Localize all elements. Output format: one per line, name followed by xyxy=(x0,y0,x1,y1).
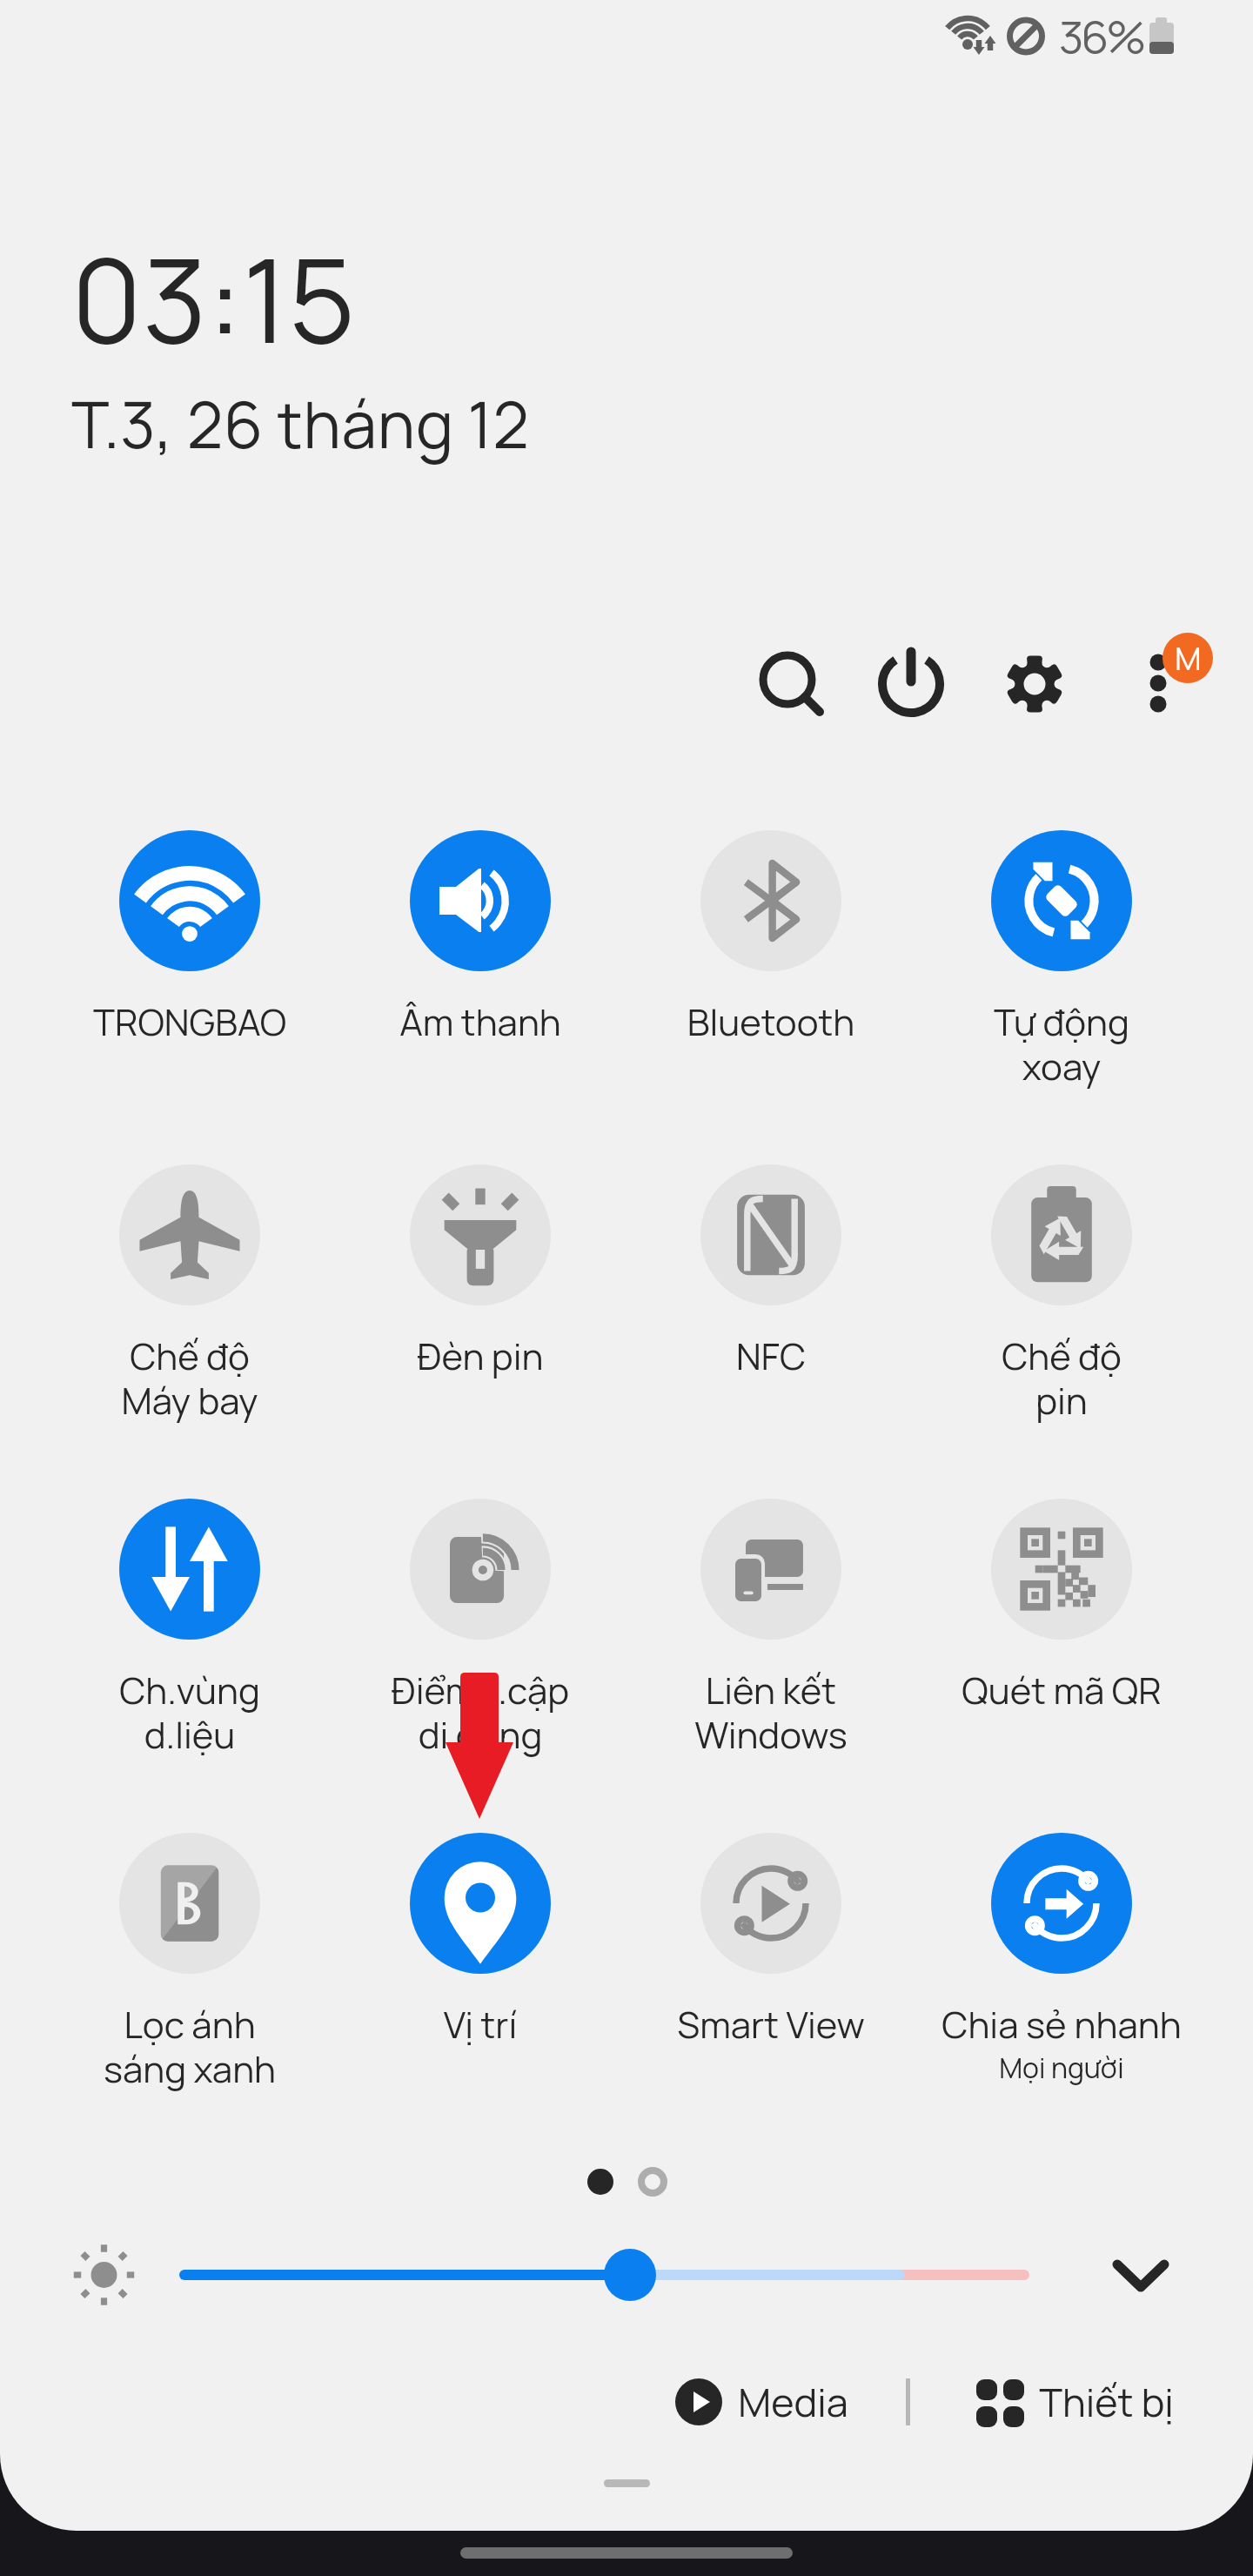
staticText: 36% xyxy=(1059,6,1144,67)
staticText: Lọc ánh sáng xanh xyxy=(44,1999,335,2094)
button[interactable]: Âm thanh xyxy=(335,830,626,1046)
staticText: Đèn pin xyxy=(335,1331,626,1380)
button[interactable]: Chia sẻ nhanh xyxy=(916,1833,1207,2087)
button[interactable]: Power xyxy=(870,643,952,725)
staticText: Media xyxy=(738,2375,848,2428)
button[interactable]: Quét mã QR xyxy=(916,1499,1207,1714)
button[interactable]: Thiết bị xyxy=(975,2375,1174,2428)
staticText: Tự động xoay xyxy=(916,996,1207,1091)
button[interactable]: Settings xyxy=(994,643,1075,725)
staticText: Mọi người xyxy=(916,2049,1207,2087)
staticText: M xyxy=(1175,637,1202,680)
button[interactable]: Đèn pin xyxy=(335,1164,626,1380)
staticText: Âm thanh xyxy=(335,996,626,1046)
staticText: Điểm t.cập di động xyxy=(335,1665,626,1760)
staticText: Chế độ Máy bay xyxy=(44,1331,335,1426)
button[interactable]: Smart View xyxy=(626,1833,916,2049)
staticText: Thiết bị xyxy=(1039,2375,1174,2428)
staticText: T.3, 26 tháng 12 xyxy=(71,380,530,467)
button[interactable]: Bluetooth xyxy=(626,830,916,1046)
button[interactable]: Tự động xoay xyxy=(916,830,1207,1091)
button[interactable]: Chế độ Máy bay xyxy=(44,1164,335,1426)
button[interactable]: Liên kết Windows xyxy=(626,1499,916,1760)
staticText: Smart View xyxy=(626,1999,916,2049)
staticText: Liên kết Windows xyxy=(626,1665,916,1760)
button[interactable]: Vị trí xyxy=(335,1833,626,2049)
staticText: Chia sẻ nhanh xyxy=(916,1999,1207,2049)
staticText: Chế độ pin xyxy=(916,1331,1207,1426)
staticText: TRONGBAO xyxy=(44,996,335,1046)
staticText: NFC xyxy=(626,1331,916,1380)
button[interactable]: Chế độ pin xyxy=(916,1164,1207,1426)
staticText: Bluetooth xyxy=(626,996,916,1046)
button[interactable]: More options xyxy=(1117,643,1199,725)
staticText: 03:15 xyxy=(71,219,357,378)
button[interactable]: NFC xyxy=(626,1164,916,1380)
button[interactable]: TRONGBAO xyxy=(44,830,335,1046)
button[interactable]: Search xyxy=(747,643,828,725)
button[interactable]: Điểm t.cập di động xyxy=(335,1499,626,1760)
staticText: Ch.vùng d.liệu xyxy=(44,1665,335,1760)
button[interactable]: Ch.vùng d.liệu xyxy=(44,1499,335,1760)
button[interactable]: Lọc ánh sáng xanh xyxy=(44,1833,335,2094)
button[interactable]: Account xyxy=(1163,633,1213,683)
button[interactable]: Media xyxy=(673,2375,848,2428)
staticText: Vị trí xyxy=(335,1999,626,2049)
staticText: Quét mã QR xyxy=(916,1665,1207,1714)
